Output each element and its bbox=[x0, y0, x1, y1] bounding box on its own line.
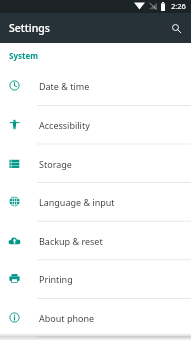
staticText: Language & input bbox=[39, 196, 115, 208]
staticText: Accessibility bbox=[39, 119, 90, 131]
staticText: Backup & reset bbox=[39, 235, 103, 247]
button[interactable]: About phone bbox=[0, 298, 191, 337]
button[interactable]: Storage bbox=[0, 144, 191, 183]
staticText: Storage bbox=[39, 158, 72, 170]
staticText: 2:26 bbox=[171, 1, 186, 11]
button[interactable]: Backup & reset bbox=[0, 221, 191, 260]
staticText: Settings bbox=[9, 21, 50, 35]
button[interactable]: Language & input bbox=[0, 182, 191, 221]
staticText: About phone bbox=[39, 312, 95, 324]
button[interactable]: Accessibility bbox=[0, 105, 191, 144]
staticText: System bbox=[9, 50, 39, 61]
staticText: Printing bbox=[39, 273, 73, 285]
button[interactable]: Date & time bbox=[0, 66, 191, 105]
button[interactable]: Search bbox=[166, 18, 186, 38]
staticText: Date & time bbox=[39, 80, 90, 92]
button[interactable]: Printing bbox=[0, 259, 191, 298]
